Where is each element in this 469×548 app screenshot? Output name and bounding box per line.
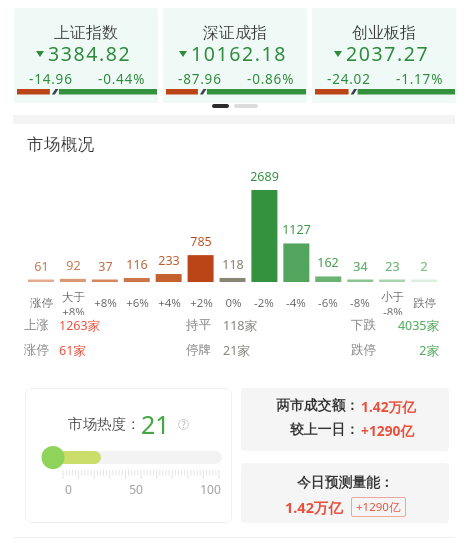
staticText: 4035家 (397, 317, 439, 334)
staticText: -8% (383, 304, 403, 315)
staticText: +8% (94, 295, 117, 311)
staticText: -14.96 (29, 70, 73, 88)
staticText: -4% (286, 295, 306, 311)
staticText: 停牌 (186, 342, 211, 358)
staticText: 2689 (250, 168, 279, 184)
staticText: +2% (190, 295, 213, 311)
staticText: 0 (65, 481, 72, 497)
staticText: 小于 (381, 290, 404, 304)
staticText: 21 (141, 407, 170, 441)
staticText: 0% (225, 295, 242, 311)
button[interactable]: 市场热度： (25, 388, 232, 523)
staticText: 跌停 (351, 342, 376, 358)
staticText: 大于 (62, 290, 85, 304)
staticText: 今日预测量能： (297, 474, 394, 491)
staticText: -8% (350, 295, 370, 311)
staticText: -0.44% (98, 70, 146, 88)
staticText: 1263家 (59, 317, 101, 334)
staticText: 21家 (223, 342, 250, 359)
button[interactable]: 上证指数 (14, 8, 158, 103)
staticText: 2 (420, 258, 428, 274)
staticText: 深证成指 (203, 23, 267, 43)
staticText: 1.42万亿 (361, 397, 417, 416)
staticText: 785 (190, 233, 212, 249)
staticText: 61 (34, 258, 49, 274)
staticText: 162 (317, 254, 339, 270)
staticText: 2037.27 (346, 40, 430, 67)
staticText: -6% (318, 295, 338, 311)
staticText: +6% (126, 295, 149, 311)
staticText: -24.02 (327, 70, 371, 88)
staticText: 37 (98, 258, 113, 274)
staticText: 118家 (223, 317, 257, 334)
button[interactable]: 今日预测量能： (241, 463, 449, 523)
staticText: 92 (66, 257, 81, 273)
staticText: 创业板指 (352, 23, 416, 43)
staticText: 涨停 (24, 342, 49, 358)
staticText: 50 (129, 481, 143, 497)
staticText: 两市成交额： (276, 397, 359, 414)
staticText: 34 (353, 258, 368, 274)
staticText: +8% (62, 304, 85, 315)
staticText: -0.86% (247, 70, 295, 88)
button[interactable]: 创业板指 (312, 8, 456, 103)
staticText: 118 (222, 256, 244, 272)
staticText: 较上一日： (290, 421, 359, 438)
staticText: 上证指数 (54, 23, 118, 43)
staticText: +1290亿 (356, 499, 401, 515)
staticText: 116 (126, 256, 148, 272)
staticText: 跌停 (413, 296, 436, 310)
staticText: 100 (200, 481, 221, 497)
staticText: -2% (254, 295, 274, 311)
staticText: 3384.82 (48, 40, 132, 67)
staticText: 上涨 (24, 317, 49, 333)
staticText: 1.42万亿 (285, 497, 343, 517)
staticText: 61家 (59, 342, 86, 359)
staticText: -87.96 (178, 70, 222, 88)
staticText: 涨停 (30, 296, 53, 310)
staticText: 市场热度： (68, 415, 141, 433)
staticText: 1127 (282, 221, 311, 237)
staticText: +4% (158, 295, 181, 311)
staticText: 23 (385, 258, 400, 274)
staticText: 持平 (186, 317, 211, 333)
button[interactable]: 两市成交额： (241, 388, 449, 451)
staticText: 市场概况 (27, 134, 95, 155)
staticText: -1.17% (396, 70, 444, 88)
staticText: 下跌 (351, 317, 376, 333)
staticText: 10162.18 (191, 40, 288, 67)
staticText: ? (182, 419, 186, 430)
staticText: 2家 (419, 342, 439, 359)
staticText: 233 (158, 252, 180, 268)
button[interactable]: 深证成指 (163, 8, 307, 103)
staticText: +1290亿 (361, 421, 415, 440)
